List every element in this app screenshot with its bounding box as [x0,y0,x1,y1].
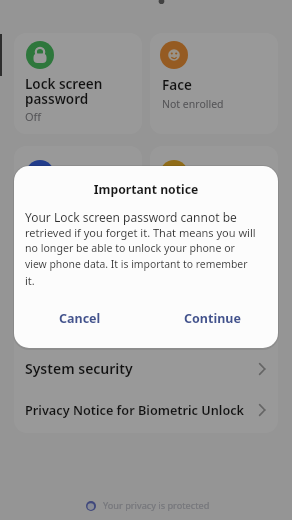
button[interactable]: Your privacy is protected [2,499,292,512]
button[interactable]: Privacy Notice for Biometric Unlock [14,388,278,431]
button[interactable]: Face [150,33,278,134]
staticText: Face [162,76,192,94]
staticText: Important notice [14,181,278,198]
staticText: Cancel [59,310,101,327]
staticText: System security [25,359,133,378]
staticText: no longer be able to unlock your phone o… [25,241,235,255]
button[interactable]: Cancel [14,303,146,333]
staticText: Continue [184,310,241,327]
button[interactable]: Continue [146,303,278,333]
staticText: Your privacy is protected [103,499,210,512]
button[interactable] [14,146,142,247]
staticText: it. [25,273,35,288]
staticText: Not enrolled [162,97,224,111]
staticText: Privacy Notice for Biometric Unlock [25,401,245,418]
button[interactable]: System security [14,347,278,390]
staticText: Lock screen [25,75,103,93]
staticText: Off [25,109,42,124]
staticText: Your Lock screen password cannot be [25,209,237,225]
button[interactable] [150,146,278,247]
button[interactable]: Lock screen [14,33,142,134]
staticText: view phone data. It is important to reme… [25,257,248,271]
staticText: password [25,90,89,108]
staticText: retrieved if you forget it. That means y… [25,225,256,240]
